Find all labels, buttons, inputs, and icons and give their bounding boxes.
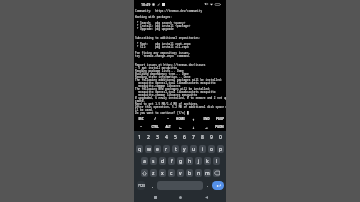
- staticText: c: [170, 170, 173, 177]
- button[interactable]: b: [186, 169, 193, 177]
- staticText: i: [202, 146, 204, 153]
- button[interactable]: /: [148, 115, 161, 123]
- button[interactable]: c: [168, 169, 175, 177]
- staticText: t: [175, 146, 177, 153]
- button[interactable]: r: [163, 145, 170, 153]
- staticText: f: [171, 158, 173, 165]
- button[interactable]: i: [199, 145, 206, 153]
- staticText: q: [138, 146, 142, 153]
- button[interactable]: [213, 169, 220, 177]
- button[interactable]: 0: [217, 133, 224, 141]
- staticText: ↑: [192, 118, 195, 121]
- button[interactable]: 6: [181, 133, 188, 141]
- button[interactable]: 2: [145, 133, 152, 141]
- button[interactable]: j: [195, 157, 202, 165]
- button[interactable]: p: [217, 145, 224, 153]
- staticText: ←: [179, 126, 182, 129]
- staticText: 6: [183, 134, 186, 141]
- button[interactable]: 3: [154, 133, 161, 141]
- staticText: m: [205, 170, 210, 177]
- button[interactable]: ?123: [137, 181, 145, 190]
- staticText: r: [165, 146, 168, 153]
- staticText: →: [205, 126, 208, 129]
- staticText: n: [197, 170, 201, 177]
- staticText: j: [198, 158, 200, 165]
- button[interactable]: [212, 181, 224, 190]
- staticText: w: [147, 146, 151, 153]
- button[interactable]: ,: [150, 181, 155, 190]
- staticText: CTRL: [151, 125, 159, 129]
- button[interactable]: h: [186, 157, 193, 165]
- button[interactable]: k: [204, 157, 211, 165]
- staticText: 4: [165, 134, 168, 141]
- button[interactable]: ←: [174, 123, 187, 131]
- staticText: 7: [192, 134, 195, 141]
- button[interactable]: e: [154, 145, 161, 153]
- staticText: x: [161, 170, 164, 177]
- button[interactable]: .: [205, 181, 210, 190]
- button[interactable]: x: [159, 169, 166, 177]
- staticText: PGDN: [215, 125, 224, 129]
- button[interactable]: m: [204, 169, 211, 177]
- button[interactable]: z: [150, 169, 157, 177]
- staticText: Community: https://termux.dev/community …: [135, 9, 226, 115]
- staticText: b: [188, 170, 192, 177]
- button[interactable]: f: [168, 157, 175, 165]
- button[interactable]: q: [136, 145, 143, 153]
- button[interactable]: s: [150, 157, 157, 165]
- staticText: ↓: [192, 126, 195, 129]
- button[interactable]: PGUP: [213, 115, 226, 123]
- staticText: g: [179, 158, 183, 165]
- button[interactable]: ALT: [161, 123, 174, 131]
- staticText: ~: [140, 125, 142, 129]
- staticText: 3: [156, 134, 159, 141]
- button[interactable]: a: [141, 157, 148, 165]
- button[interactable]: 5: [172, 133, 179, 141]
- button[interactable]: [141, 169, 148, 177]
- button[interactable]: o: [208, 145, 215, 153]
- staticText: u: [192, 146, 196, 153]
- staticText: END: [203, 117, 210, 121]
- button[interactable]: v: [177, 169, 184, 177]
- button[interactable]: 9: [208, 133, 215, 141]
- staticText: HOME: [176, 117, 185, 121]
- button[interactable]: −: [161, 115, 174, 123]
- button[interactable]: ↓: [187, 123, 200, 131]
- button[interactable]: ESC: [134, 115, 148, 123]
- button[interactable]: CTRL: [148, 123, 161, 131]
- button[interactable]: →: [200, 123, 213, 131]
- staticText: ,: [152, 183, 154, 189]
- button[interactable]: y: [181, 145, 188, 153]
- button[interactable]: 4: [163, 133, 170, 141]
- staticText: 10:49: [141, 2, 151, 7]
- staticText: ?123: [138, 184, 145, 188]
- staticText: −: [167, 117, 169, 121]
- button[interactable]: Back: [201, 192, 211, 202]
- button[interactable]: u: [190, 145, 197, 153]
- button[interactable]: g: [177, 157, 184, 165]
- button[interactable]: HOME: [174, 115, 187, 123]
- button[interactable]: PGDN: [213, 123, 226, 131]
- button[interactable]: ↑: [187, 115, 200, 123]
- button[interactable]: END: [200, 115, 213, 123]
- staticText: y: [183, 146, 186, 153]
- button[interactable]: 8: [199, 133, 206, 141]
- button[interactable]: ~: [134, 123, 148, 131]
- staticText: 5: [174, 134, 177, 141]
- button[interactable]: Recents: [150, 192, 160, 202]
- button[interactable]: Home: [175, 192, 185, 202]
- button[interactable]: l: [213, 157, 220, 165]
- staticText: /: [154, 117, 156, 121]
- button[interactable]: t: [172, 145, 179, 153]
- button[interactable]: d: [159, 157, 166, 165]
- staticText: ESC: [138, 117, 144, 121]
- button[interactable]: 1: [136, 133, 143, 141]
- button[interactable]: n: [195, 169, 202, 177]
- button[interactable]: w: [145, 145, 152, 153]
- staticText: 1: [138, 134, 141, 141]
- button[interactable]: 7: [190, 133, 197, 141]
- button[interactable]: [157, 181, 203, 190]
- staticText: o: [210, 146, 214, 153]
- staticText: 2: [147, 134, 150, 141]
- staticText: PGUP: [216, 117, 224, 121]
